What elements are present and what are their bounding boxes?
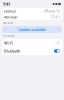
staticText: SECTION xyxy=(3,21,13,25)
staticText: Version xyxy=(4,14,17,20)
staticText: Device xyxy=(4,8,16,14)
button[interactable]: Device xyxy=(2,8,62,14)
button[interactable]: Version xyxy=(2,14,62,20)
button[interactable]: Wi-Fi xyxy=(2,39,62,47)
staticText: 9:41 xyxy=(3,1,10,7)
button[interactable]: Bluetooth xyxy=(2,47,62,55)
staticText: Update available xyxy=(18,27,46,32)
staticText: Wi-Fi xyxy=(4,40,13,46)
staticText: OPTIONS xyxy=(3,34,14,38)
staticText: iPhone 15 xyxy=(44,8,60,14)
button[interactable]: Update available xyxy=(2,26,62,33)
staticText: 17.4.1 xyxy=(50,14,60,20)
staticText: Bluetooth xyxy=(4,48,20,54)
